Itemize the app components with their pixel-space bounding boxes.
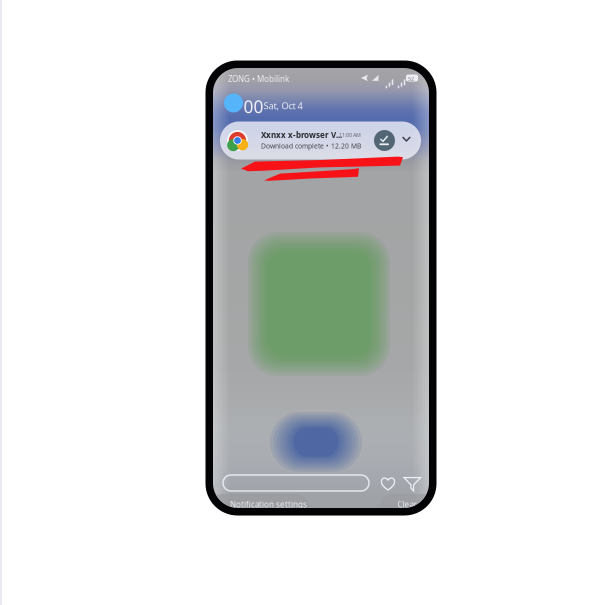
staticText: ZONG • Mobilink (228, 73, 289, 84)
button[interactable]: Notification settings (209, 494, 309, 520)
staticText: Download complete • 12.20 MB (261, 141, 361, 150)
staticText: Notification settings (230, 499, 307, 510)
button[interactable]: Xxnxx x-browser V... (220, 121, 421, 159)
button[interactable]: Filter notifications (404, 477, 421, 491)
button[interactable]: Brightness (223, 475, 369, 491)
staticText: 00 (243, 95, 263, 118)
button[interactable]: Clear (379, 494, 439, 520)
staticText: 11:00 AM (339, 131, 361, 139)
staticText: Clear (397, 499, 416, 510)
staticText: 52 (408, 75, 414, 82)
staticText: Xxnxx x-browser V... (261, 129, 342, 140)
button[interactable]: Favourites (381, 477, 395, 490)
staticText: Sat, Oct 4 (263, 99, 302, 112)
